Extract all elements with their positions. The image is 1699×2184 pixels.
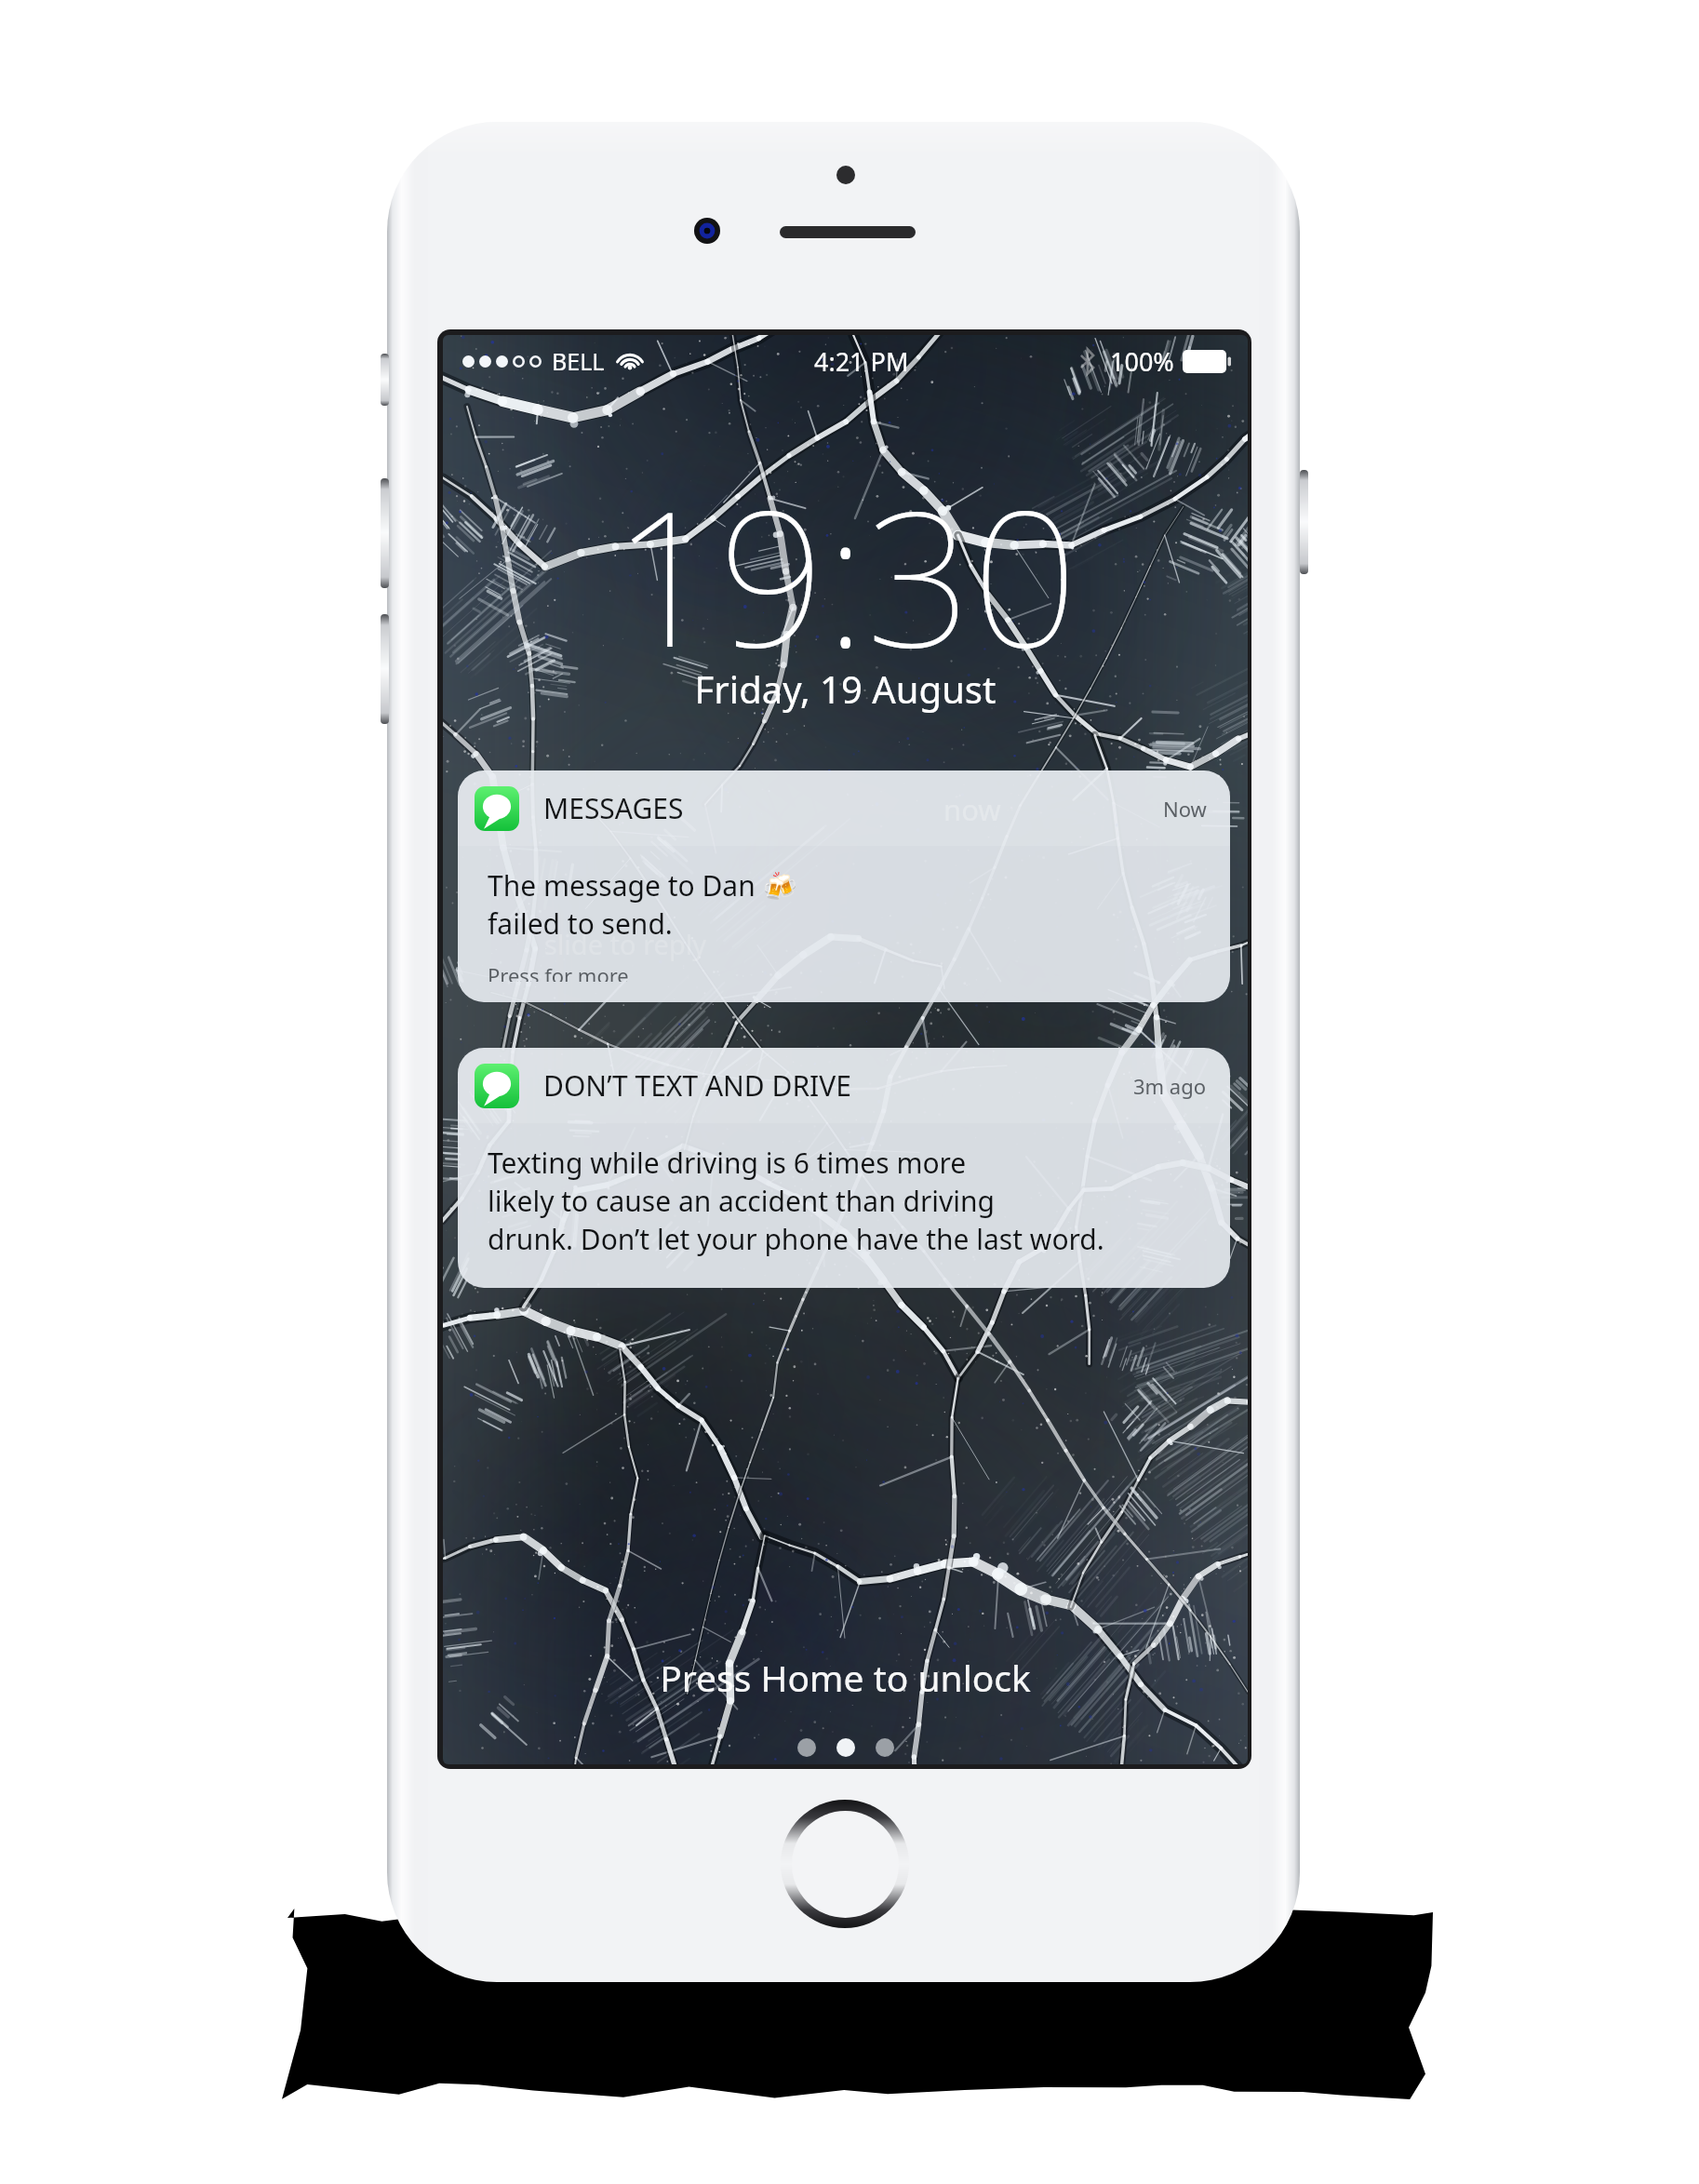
button[interactable]: Widgets page: [876, 1738, 894, 1757]
staticText: likely to cause an accident than driving: [488, 1182, 996, 1220]
staticText: BELL: [552, 345, 605, 377]
button[interactable]: Ring / silent switch: [381, 354, 389, 406]
staticText: Friday, 19 August: [443, 663, 1248, 714]
staticText: Press for more: [488, 961, 629, 982]
button[interactable]: Camera page: [797, 1738, 816, 1757]
staticText: The message to Dan 🍻: [488, 866, 797, 904]
staticText: DON’T TEXT AND DRIVE: [543, 1066, 851, 1105]
staticText: drunk. Don’t let your phone have the las…: [488, 1220, 1104, 1258]
staticText: MESSAGES: [543, 789, 684, 827]
button[interactable]: Volume down: [381, 614, 389, 724]
staticText: now: [943, 790, 1001, 829]
staticText: Press Home to unlock: [443, 1653, 1248, 1702]
button[interactable]: Press Home to unlock: [443, 1647, 1248, 1707]
staticText: 3m ago: [1133, 1072, 1207, 1100]
staticText: Now: [1163, 795, 1207, 823]
staticText: 100%: [1110, 344, 1174, 379]
button[interactable]: DON’T TEXT AND DRIVE: [458, 1048, 1230, 1288]
staticText: failed to send.: [488, 904, 673, 943]
staticText: slide to reply: [544, 926, 707, 962]
staticText: 19:30: [443, 448, 1248, 701]
staticText: 4:21 PM: [814, 344, 909, 379]
button[interactable]: Home button: [781, 1800, 909, 1928]
button[interactable]: Volume up: [381, 478, 389, 588]
button[interactable]: Lock screen page: [836, 1738, 855, 1757]
staticText: Texting while driving is 6 times more: [488, 1144, 967, 1182]
button[interactable]: now: [458, 770, 1230, 1002]
button[interactable]: Power: [1300, 470, 1308, 574]
